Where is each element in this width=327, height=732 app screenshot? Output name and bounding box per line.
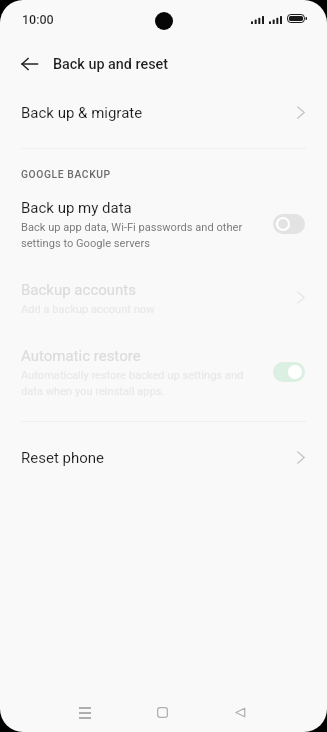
button[interactable]: Backup accounts (0, 272, 327, 324)
button[interactable]: Toggle off (273, 214, 305, 234)
staticText: Back up my data (21, 199, 132, 217)
button[interactable]: Automatic restore (0, 339, 327, 405)
button[interactable]: Toggle on (273, 362, 305, 382)
button[interactable]: Reset phone (0, 434, 327, 482)
button[interactable]: Home (140, 689, 185, 732)
staticText: Add a backup account now (21, 303, 155, 316)
staticText: Automatically restore backed up settings… (21, 369, 244, 398)
staticText: Back up & migrate (21, 104, 297, 122)
button[interactable]: Back (218, 689, 263, 732)
button[interactable]: Recent apps (62, 689, 107, 732)
staticText: Backup accounts (21, 281, 136, 299)
staticText: Back up app data, Wi-Fi passwords and ot… (21, 221, 243, 250)
staticText: Automatic restore (21, 347, 141, 365)
button[interactable]: Navigate up (13, 48, 45, 80)
button[interactable]: Back up & migrate (0, 89, 327, 137)
staticText: GOOGLE BACKUP (21, 168, 111, 180)
button[interactable]: Back up my data (0, 191, 327, 257)
staticText: 10:00 (22, 12, 54, 27)
staticText: Back up and reset (53, 56, 169, 73)
staticText: Reset phone (21, 449, 297, 467)
